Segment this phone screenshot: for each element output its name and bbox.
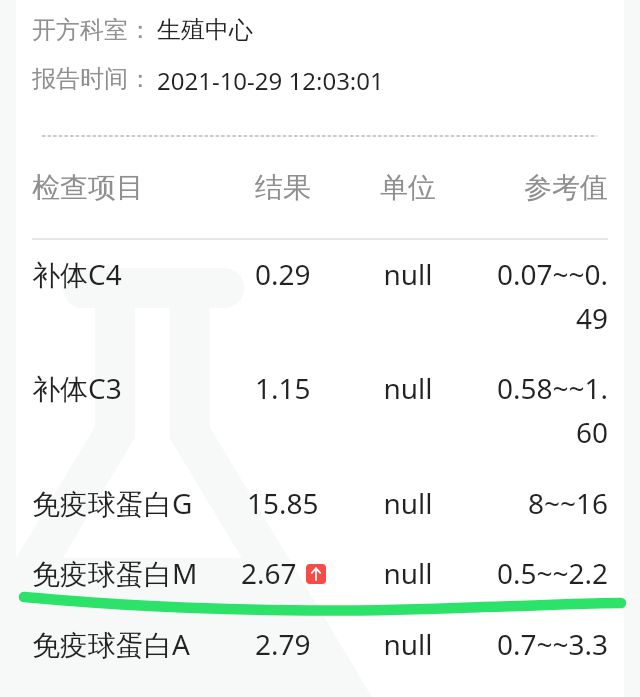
staticText: 0.5~~2.2	[478, 554, 608, 592]
staticText: 0.29	[255, 255, 311, 293]
staticText: 0.58~~1. 60	[478, 369, 608, 451]
staticText: 1.15	[255, 369, 311, 407]
button[interactable]: 免疫球蛋白G	[16, 484, 624, 522]
button[interactable]: 补体C4	[16, 255, 624, 337]
button[interactable]: 免疫球蛋白M	[16, 554, 624, 592]
staticText: null	[338, 554, 478, 592]
staticText: 2.67	[241, 554, 297, 592]
staticText: 报告时间：	[32, 64, 152, 94]
staticText: 参考值	[478, 170, 608, 205]
staticText: 补体C4	[32, 255, 228, 293]
staticText: 免疫球蛋白G	[32, 484, 228, 522]
staticText: 检查项目	[32, 170, 228, 205]
staticText: 开方科室：	[32, 15, 152, 45]
staticText: 结果	[228, 170, 338, 205]
staticText: null	[338, 255, 478, 293]
staticText: null	[338, 625, 478, 663]
staticText: 15.85	[247, 484, 319, 522]
staticText: 生殖中心	[157, 15, 253, 45]
staticText: null	[338, 484, 478, 522]
staticText: null	[338, 369, 478, 407]
staticText: 0.7~~3.3	[478, 625, 608, 663]
staticText: 单位	[338, 170, 478, 205]
staticText: 2.79	[255, 625, 311, 663]
button[interactable]: 补体C3	[16, 369, 624, 451]
button[interactable]: 免疫球蛋白A	[16, 625, 624, 663]
staticText: 免疫球蛋白A	[32, 625, 228, 663]
other: High value	[306, 564, 326, 584]
staticText: 2021-10-29 12:03:01	[157, 64, 384, 97]
staticText: 0.07~~0. 49	[478, 255, 608, 337]
staticText: 8~~16	[478, 484, 608, 522]
staticText: 免疫球蛋白M	[32, 554, 228, 592]
staticText: 补体C3	[32, 369, 228, 407]
